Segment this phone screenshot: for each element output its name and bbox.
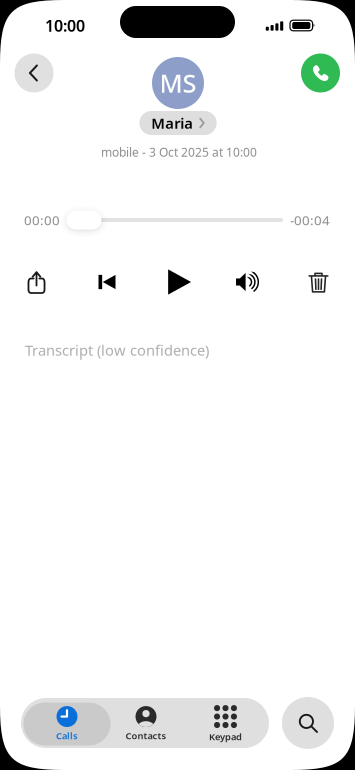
button[interactable]: Delete: [296, 262, 340, 302]
button[interactable]: Calls: [23, 702, 110, 745]
button[interactable]: Share: [14, 262, 58, 302]
staticText: Calls: [56, 730, 78, 742]
button[interactable]: Rewind: [85, 262, 129, 302]
button[interactable]: Keypad: [188, 702, 262, 745]
button[interactable]: Maria: [139, 111, 217, 135]
staticText: Maria: [151, 113, 193, 133]
button[interactable]: Search: [282, 697, 334, 749]
button[interactable]: Back: [12, 51, 56, 95]
staticText: -00:04: [290, 211, 330, 229]
button[interactable]: Contacts: [109, 702, 183, 745]
staticText: MS: [159, 66, 196, 100]
staticText: Contacts: [125, 730, 166, 742]
button[interactable]: Call Maria: [298, 51, 342, 95]
staticText: 10:00: [45, 15, 85, 36]
button[interactable]: Speaker: [226, 262, 270, 302]
staticText: mobile - 3 Oct 2025 at 10:00: [101, 144, 257, 160]
staticText: 00:00: [24, 211, 60, 229]
button[interactable]: Play: [157, 262, 201, 302]
staticText: Transcript (low confidence): [25, 340, 209, 360]
staticText: Keypad: [209, 731, 242, 743]
